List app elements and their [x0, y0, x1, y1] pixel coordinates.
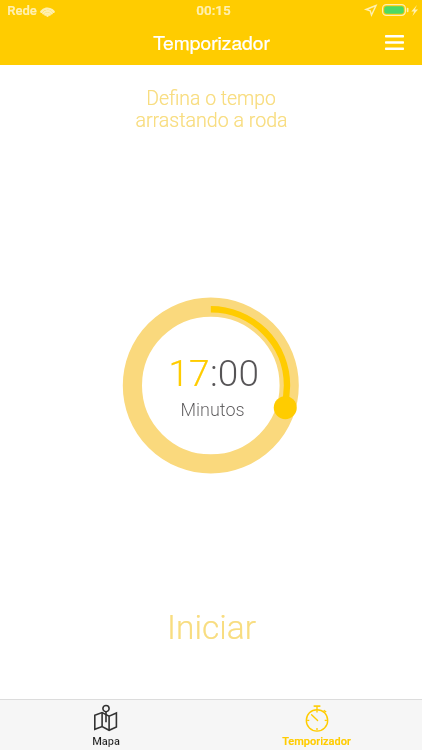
staticText: Mapa	[92, 735, 120, 748]
button[interactable]: Menu	[375, 25, 413, 59]
staticText: Temporizador	[153, 28, 270, 55]
button[interactable]: Mapa	[0, 700, 211, 750]
staticText: 17	[168, 352, 210, 395]
staticText: 00:15	[196, 2, 231, 18]
button[interactable]: Temporizador	[211, 700, 422, 750]
staticText: arrastando a roda	[135, 109, 288, 132]
button[interactable]: Iniciar	[0, 600, 422, 654]
staticText: Minutos	[180, 399, 245, 420]
staticText: Rede	[7, 3, 37, 18]
staticText: Temporizador	[282, 735, 351, 748]
staticText: Defina o tempo	[146, 87, 276, 110]
staticText: :00	[210, 352, 259, 395]
staticText: Iniciar	[167, 608, 256, 647]
